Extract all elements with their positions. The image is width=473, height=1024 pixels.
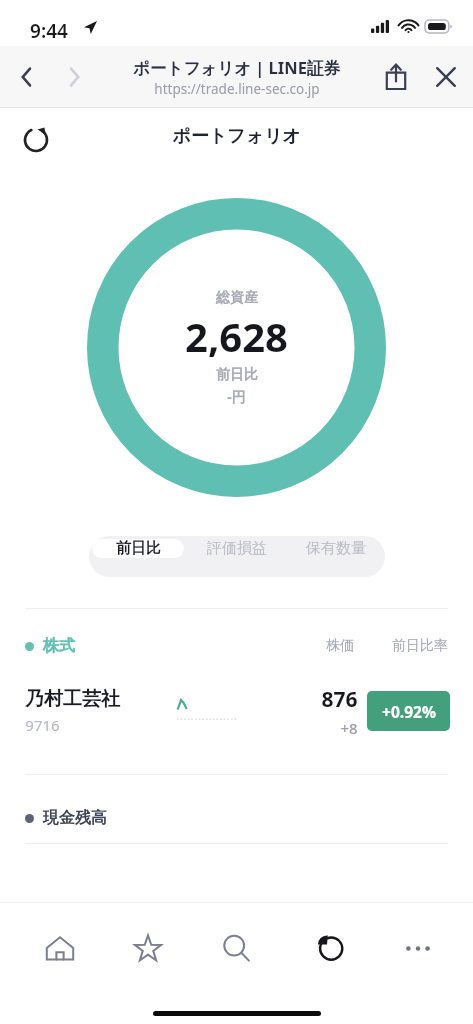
staticText: 株価 [326,637,354,655]
staticText: -円 [227,387,246,406]
staticText: 株式 [43,636,75,656]
button[interactable]: Portfolio [298,922,362,974]
button[interactable]: Close [426,57,466,97]
staticText: 前日比率 [392,637,448,655]
staticText: 総資産 [216,289,258,307]
button[interactable]: Home [28,922,92,974]
staticText: 前日比 [116,539,161,558]
button[interactable]: More [386,922,450,974]
staticText: 現金残高 [43,808,107,828]
staticText: 評価損益 [207,539,267,558]
button[interactable]: 乃村工芸社 [0,670,473,748]
staticText: 乃村工芸社 [25,687,120,711]
staticText: +0.92% [382,701,436,722]
staticText: 前日比 [216,366,258,384]
button[interactable]: 評価損益 [190,539,283,558]
button[interactable]: Share [376,57,416,97]
staticText: 保有数量 [306,539,366,558]
staticText: +8 [340,718,358,738]
button[interactable]: Search [204,922,268,974]
button[interactable]: Back [8,57,48,97]
staticText: ポートフォリオ | LINE証券 [133,56,340,79]
button[interactable]: 前日比 [92,539,184,558]
button[interactable]: Refresh [16,120,56,160]
staticText: https://trade.line-sec.co.jp [154,80,320,98]
staticText: 9716 [25,715,60,735]
staticText: ポートフォリオ [172,125,301,148]
staticText: 876 [321,685,358,714]
button[interactable]: 現金残高 [25,794,448,842]
staticText: 2,628 [185,309,288,363]
button[interactable]: 保有数量 [289,539,382,558]
button[interactable]: Forward [53,57,93,97]
button[interactable]: Favorites [116,922,180,974]
staticText: 9:44 [30,18,68,44]
